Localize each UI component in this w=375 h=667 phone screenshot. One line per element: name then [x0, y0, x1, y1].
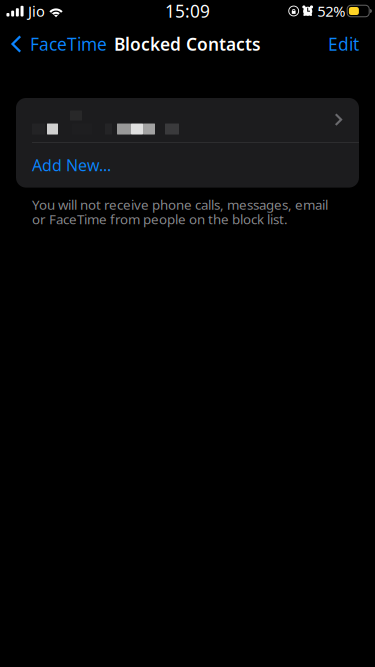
staticText: Edit [328, 32, 359, 55]
button[interactable]: FaceTime [0, 22, 115, 66]
staticText: Add New... [32, 154, 111, 176]
button[interactable]: Add New... [16, 143, 359, 188]
staticText: Jio [28, 1, 45, 21]
button[interactable] [16, 98, 359, 142]
staticText: 15:09 [165, 0, 210, 22]
staticText: or FaceTime from people on the block lis… [32, 210, 288, 228]
staticText: You will not receive phone calls, messag… [32, 196, 328, 213]
staticText: Blocked Contacts [114, 32, 261, 55]
staticText: 52% [317, 1, 345, 21]
staticText: FaceTime [30, 32, 107, 55]
button[interactable]: Edit [314, 22, 375, 66]
